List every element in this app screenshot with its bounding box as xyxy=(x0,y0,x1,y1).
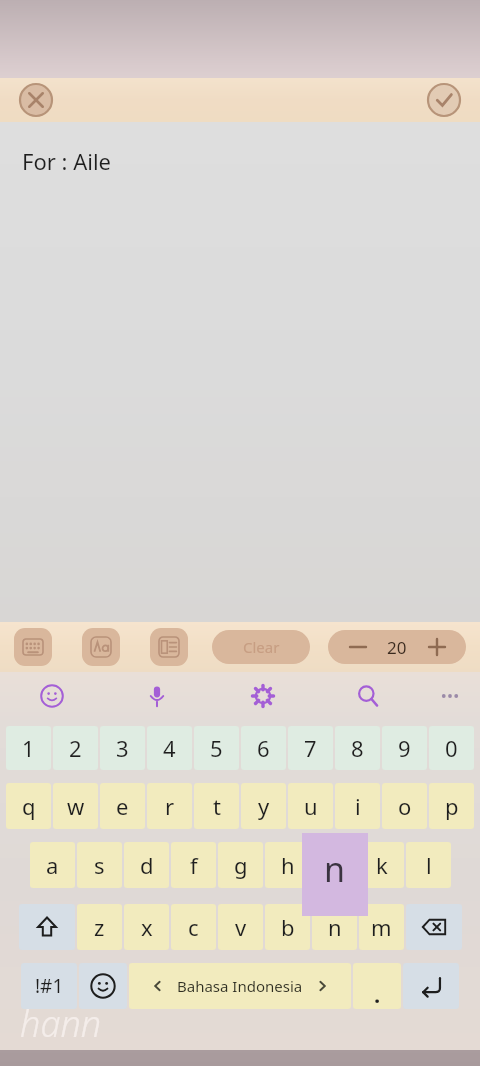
button[interactable]: 5 xyxy=(194,726,239,770)
staticText: 2 xyxy=(69,733,82,763)
staticText: j xyxy=(332,850,338,880)
button[interactable]: Clear xyxy=(212,630,310,664)
staticText: 0 xyxy=(445,733,458,763)
button[interactable]: Emoji xyxy=(32,676,72,716)
button[interactable]: k xyxy=(359,842,404,888)
staticText: l xyxy=(426,850,432,880)
button[interactable]: More xyxy=(430,676,470,716)
button[interactable]: Emoji xyxy=(79,963,127,1009)
button[interactable]: o xyxy=(382,783,427,829)
staticText: h xyxy=(281,850,295,880)
button[interactable]: Increase xyxy=(424,634,450,660)
staticText: 7 xyxy=(304,733,317,763)
button[interactable]: Search xyxy=(348,676,388,716)
button[interactable]: 8 xyxy=(335,726,380,770)
staticText: g xyxy=(234,850,248,880)
button[interactable]: q xyxy=(6,783,51,829)
button[interactable]: Text style xyxy=(150,628,188,666)
button[interactable]: j xyxy=(312,842,357,888)
button[interactable]: n xyxy=(312,904,357,950)
button[interactable]: b xyxy=(265,904,310,950)
staticText: v xyxy=(235,912,247,942)
button[interactable]: a xyxy=(30,842,75,888)
button[interactable]: g xyxy=(218,842,263,888)
staticText: Clear xyxy=(243,637,280,657)
staticText: x xyxy=(141,912,153,942)
button[interactable]: m xyxy=(359,904,404,950)
button[interactable]: x xyxy=(124,904,169,950)
button[interactable]: e xyxy=(100,783,145,829)
button[interactable]: s xyxy=(77,842,122,888)
button[interactable]: h xyxy=(265,842,310,888)
button[interactable]: 6 xyxy=(241,726,286,770)
staticText: i xyxy=(355,791,361,821)
button[interactable]: y xyxy=(241,783,286,829)
button[interactable]: 9 xyxy=(382,726,427,770)
button[interactable]: 1 xyxy=(6,726,51,770)
button[interactable]: v xyxy=(218,904,263,950)
button[interactable]: . xyxy=(353,963,401,1009)
staticText: k xyxy=(376,850,388,880)
button[interactable]: 2 xyxy=(53,726,98,770)
button[interactable]: Bahasa Indonesia xyxy=(129,963,351,1009)
button[interactable]: t xyxy=(194,783,239,829)
staticText: w xyxy=(67,791,85,821)
staticText: u xyxy=(304,791,318,821)
button[interactable]: c xyxy=(171,904,216,950)
staticText: 6 xyxy=(257,733,270,763)
button[interactable]: !#1 xyxy=(21,963,77,1009)
staticText: n xyxy=(324,846,346,892)
button[interactable]: 4 xyxy=(147,726,192,770)
button[interactable]: 3 xyxy=(100,726,145,770)
button[interactable]: Shift xyxy=(19,904,75,950)
staticText: f xyxy=(190,850,198,880)
button[interactable]: Confirm xyxy=(424,80,464,120)
button[interactable]: p xyxy=(429,783,474,829)
staticText: hann xyxy=(20,999,102,1048)
staticText: . xyxy=(374,979,381,1009)
button[interactable]: Voice input xyxy=(137,676,177,716)
staticText: t xyxy=(213,791,221,821)
button[interactable]: z xyxy=(77,904,122,950)
staticText: m xyxy=(371,912,392,942)
staticText: q xyxy=(22,791,36,821)
button[interactable]: l xyxy=(406,842,451,888)
staticText: y xyxy=(258,791,270,821)
button[interactable]: Decrease xyxy=(345,634,371,660)
staticText: p xyxy=(445,791,459,821)
staticText: 4 xyxy=(163,733,176,763)
staticText: b xyxy=(281,912,295,942)
staticText: 8 xyxy=(351,733,364,763)
staticText: For : Aile xyxy=(22,146,111,176)
staticText: a xyxy=(46,850,59,880)
button[interactable]: Backspace xyxy=(406,904,462,950)
button[interactable]: Settings xyxy=(243,676,283,716)
button[interactable]: r xyxy=(147,783,192,829)
button[interactable]: i xyxy=(335,783,380,829)
staticText: 1 xyxy=(22,733,35,763)
staticText: 9 xyxy=(398,733,411,763)
staticText: c xyxy=(188,912,199,942)
staticText: r xyxy=(165,791,175,821)
button[interactable]: d xyxy=(124,842,169,888)
staticText: Bahasa Indonesia xyxy=(177,976,303,996)
staticText: !#1 xyxy=(35,973,64,999)
staticText: z xyxy=(94,912,105,942)
button[interactable]: 7 xyxy=(288,726,333,770)
staticText: o xyxy=(398,791,412,821)
button[interactable]: u xyxy=(288,783,333,829)
staticText: 20 xyxy=(387,636,407,659)
staticText: d xyxy=(140,850,154,880)
staticText: 5 xyxy=(210,733,223,763)
staticText: s xyxy=(94,850,105,880)
button[interactable]: w xyxy=(53,783,98,829)
button[interactable]: Font xyxy=(82,628,120,666)
button[interactable]: Close xyxy=(16,80,56,120)
staticText: 3 xyxy=(116,733,129,763)
button[interactable]: Keyboard layout xyxy=(14,628,52,666)
staticText: n xyxy=(328,912,342,942)
button[interactable]: 0 xyxy=(429,726,474,770)
staticText: e xyxy=(116,791,129,821)
button[interactable]: f xyxy=(171,842,216,888)
button[interactable]: Enter xyxy=(403,963,459,1009)
